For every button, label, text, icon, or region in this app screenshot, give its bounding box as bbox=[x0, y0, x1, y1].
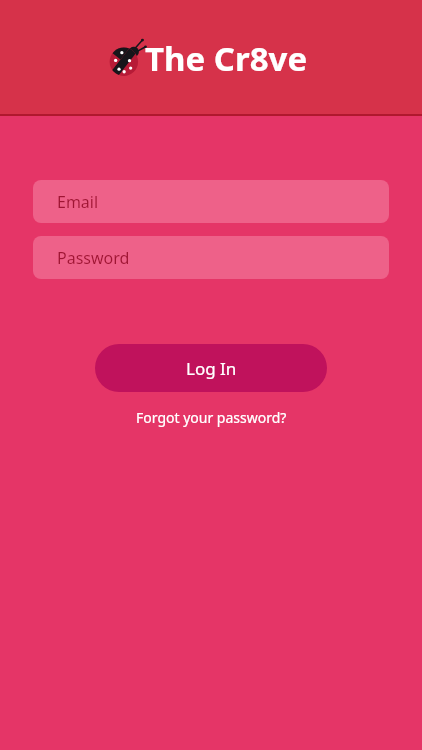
staticText: Password bbox=[57, 247, 130, 269]
button[interactable]: Password bbox=[33, 236, 389, 279]
staticText: Log In bbox=[186, 357, 237, 380]
staticText: The Cr8ve bbox=[145, 36, 308, 81]
button[interactable]: Email bbox=[33, 180, 389, 223]
other: The Cr8ve ladybug logo bbox=[109, 42, 142, 75]
staticText: Email bbox=[57, 191, 99, 213]
button[interactable]: Log In bbox=[95, 344, 327, 392]
staticText: Forgot your password? bbox=[136, 408, 287, 427]
button[interactable]: Forgot your password? bbox=[124, 404, 299, 431]
